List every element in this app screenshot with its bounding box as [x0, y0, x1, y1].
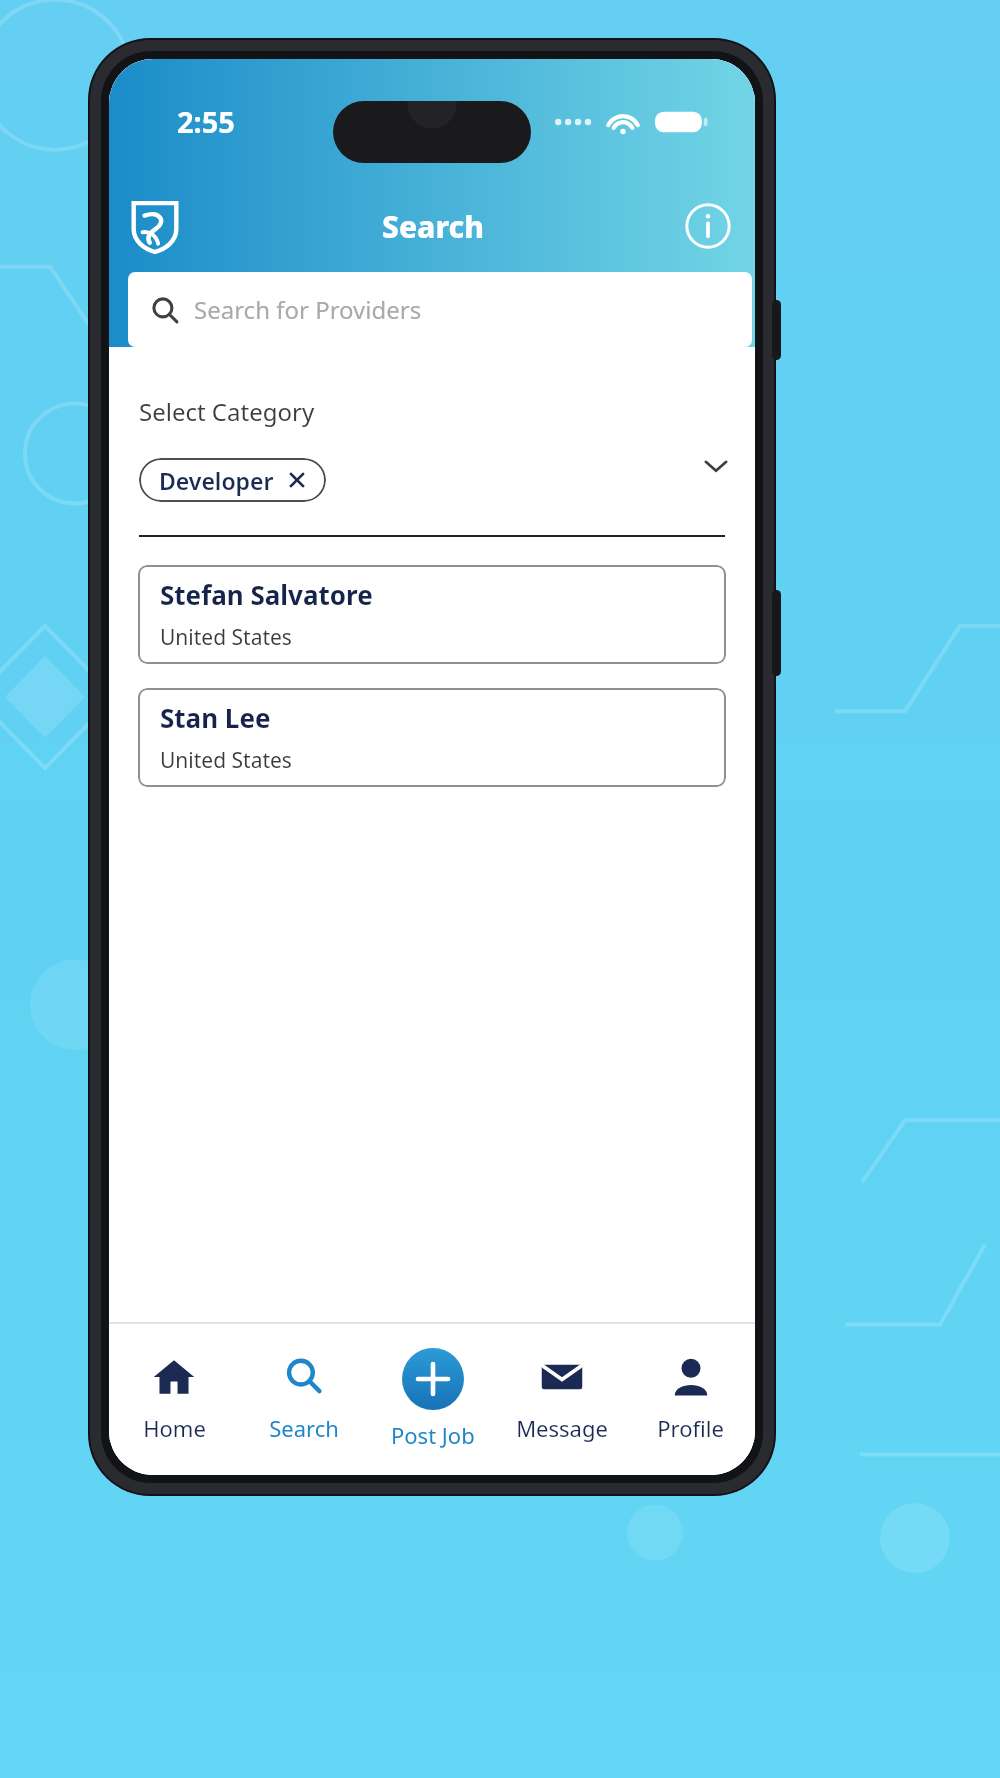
staticText: United States — [160, 623, 292, 652]
button[interactable]: Message — [497, 1323, 626, 1475]
other: Remove Developer — [288, 471, 306, 489]
button[interactable]: Information — [685, 203, 731, 249]
staticText: Developer — [159, 465, 274, 496]
staticText: Stan Lee — [160, 700, 271, 735]
staticText: Search — [269, 1413, 339, 1443]
staticText: United States — [160, 746, 292, 775]
button[interactable]: Developer — [139, 458, 326, 502]
other: Expand categories — [701, 451, 731, 481]
staticText: Profile — [657, 1413, 724, 1443]
button[interactable]: Profile — [626, 1323, 755, 1475]
staticText: Search for Providers — [194, 293, 422, 326]
button[interactable]: App logo — [129, 200, 181, 252]
button[interactable]: Search for Providers — [128, 272, 752, 347]
staticText: Message — [516, 1413, 608, 1443]
button[interactable]: Search — [239, 1323, 368, 1475]
button[interactable]: Stan Lee — [138, 688, 726, 787]
staticText: Post Job — [391, 1420, 475, 1450]
staticText: Search — [382, 206, 485, 247]
button[interactable]: Developer — [109, 452, 755, 508]
staticText: Stefan Salvatore — [160, 577, 373, 612]
staticText: Home — [143, 1413, 206, 1443]
button[interactable]: Home — [109, 1323, 239, 1475]
other: Post Job — [402, 1348, 464, 1410]
staticText: 2:55 — [177, 102, 235, 141]
button[interactable]: Stefan Salvatore — [138, 565, 726, 664]
staticText: Select Category — [139, 395, 315, 428]
button[interactable]: Post Job — [368, 1323, 497, 1475]
